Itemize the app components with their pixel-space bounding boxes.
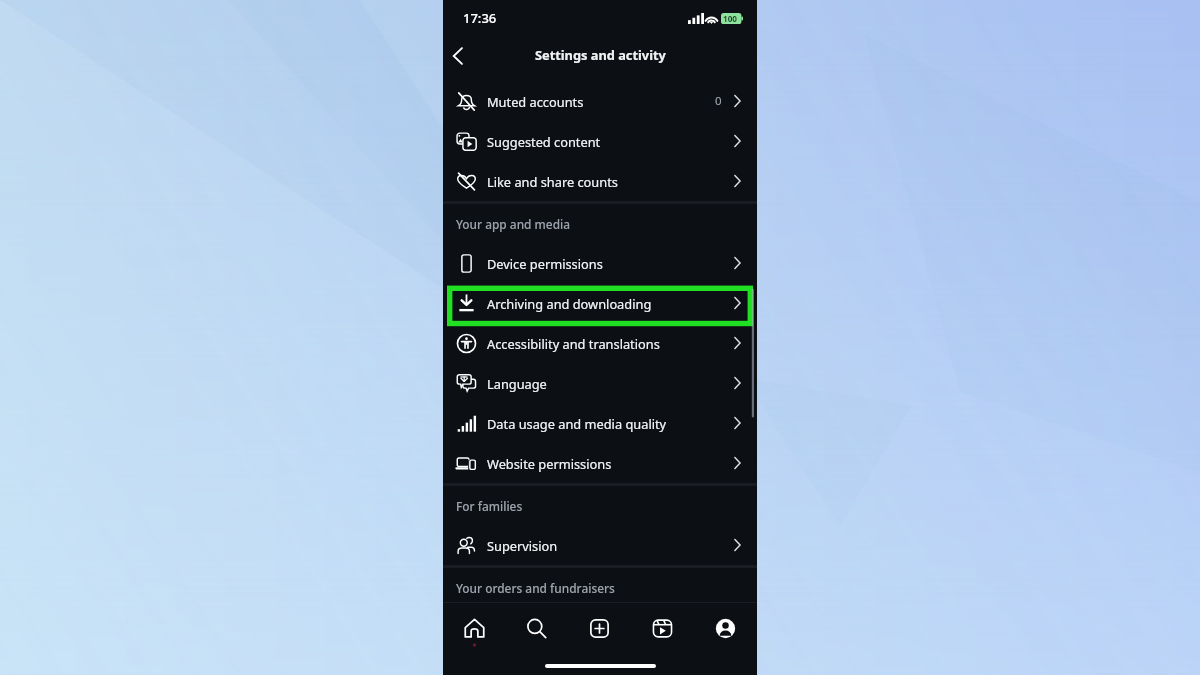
button[interactable]: Profile [694, 603, 757, 653]
button[interactable]: Data usage and media quality [443, 403, 757, 443]
staticText: Archiving and downloading [487, 295, 652, 312]
staticText: Muted accounts [487, 93, 584, 110]
button[interactable]: Website permissions [443, 443, 757, 483]
staticText: Accessibility and translations [487, 335, 660, 352]
staticText: Suggested content [487, 133, 601, 150]
button[interactable]: Muted accounts [443, 81, 757, 121]
button[interactable]: Device permissions [443, 243, 757, 283]
button[interactable]: Suggested content [443, 121, 757, 161]
staticText: 100 [723, 13, 738, 24]
staticText: Data usage and media quality [487, 415, 667, 432]
button[interactable]: Search [505, 603, 568, 653]
staticText: Device permissions [487, 255, 603, 272]
button[interactable]: Back [445, 43, 471, 69]
staticText: 0 [715, 93, 722, 109]
staticText: Settings and activity [535, 46, 666, 63]
staticText: Website permissions [487, 455, 612, 472]
staticText: Language [487, 375, 547, 392]
staticText: 17:36 [463, 9, 497, 27]
staticText: Supervision [487, 537, 558, 554]
button[interactable]: Supervision [443, 525, 757, 565]
staticText: Your orders and fundraisers [456, 580, 615, 596]
staticText: Like and share counts [487, 173, 618, 190]
button[interactable]: Create [568, 603, 631, 653]
staticText: For families [456, 498, 523, 514]
button[interactable]: Reels [631, 603, 694, 653]
button[interactable]: Like and share counts [443, 161, 757, 201]
button[interactable]: Home [443, 603, 505, 653]
staticText: Your app and media [456, 216, 571, 232]
button[interactable]: Language [443, 363, 757, 403]
button[interactable]: Accessibility and translations [443, 323, 757, 363]
button[interactable]: Archiving and downloading [443, 283, 757, 323]
